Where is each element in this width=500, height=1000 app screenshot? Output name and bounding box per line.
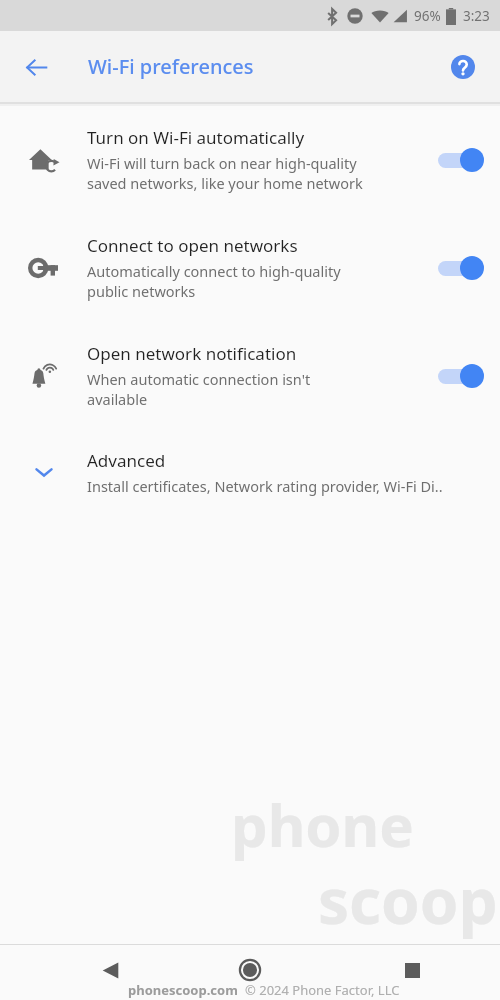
staticText: When automatic connection isn't availabl… — [87, 369, 311, 410]
staticText: Connect to open networks — [87, 234, 298, 257]
button[interactable]: Home — [226, 946, 274, 994]
button[interactable]: Advanced — [0, 430, 500, 514]
button[interactable]: Back — [10, 41, 62, 93]
staticText: Wi-Fi preferences — [88, 53, 254, 80]
staticText: © 2024 Phone Factor, LLC — [245, 981, 400, 999]
staticText: Automatically connect to high-quality pu… — [87, 261, 341, 302]
button[interactable]: Toggle Open network notification — [424, 348, 500, 404]
button[interactable]: Recent apps — [388, 946, 436, 994]
staticText: 96% — [414, 7, 441, 25]
staticText: Wi-Fi will turn back on near high-qualit… — [87, 153, 363, 194]
button[interactable]: Open network notification — [0, 322, 500, 430]
staticText: phonescoop.com — [128, 981, 238, 999]
button[interactable]: Toggle Turn on Wi-Fi automatically — [424, 132, 500, 188]
staticText: phone — [231, 785, 414, 864]
staticText: Turn on Wi-Fi automatically — [87, 126, 305, 149]
staticText: Open network notification — [87, 342, 297, 365]
button[interactable]: Back — [86, 946, 134, 994]
button[interactable]: Help — [439, 43, 487, 91]
staticText: scoop — [318, 858, 498, 942]
staticText: Advanced — [87, 449, 166, 472]
button[interactable]: Connect to open networks — [0, 214, 500, 322]
button[interactable]: Turn on Wi-Fi automatically — [0, 106, 500, 214]
staticText: Install certificates, Network rating pro… — [87, 476, 443, 496]
staticText: 3:23 — [463, 7, 490, 25]
button[interactable]: Toggle Connect to open networks — [424, 240, 500, 296]
